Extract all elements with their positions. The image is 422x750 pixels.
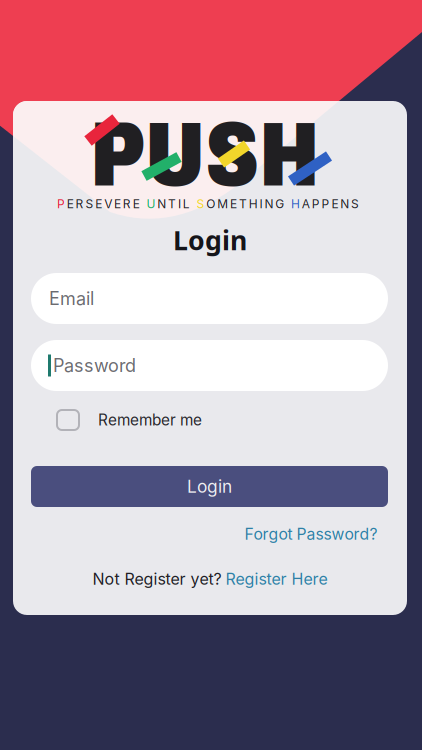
button[interactable]: Password: [31, 340, 388, 391]
button[interactable]: Login: [31, 466, 388, 507]
button[interactable]: Forgot Password?: [242, 524, 379, 543]
staticText: Password: [53, 355, 136, 376]
staticText: Register Here: [225, 569, 327, 589]
button[interactable]: Remember me: [57, 404, 217, 436]
staticText: Forgot Password?: [244, 524, 377, 543]
staticText: Login: [173, 222, 247, 258]
button[interactable]: Email: [31, 273, 388, 324]
staticText: PERSEVERE UNTIL SOMETHING HAPPENS: [57, 197, 359, 211]
staticText: Not Register yet?: [92, 569, 221, 589]
staticText: Login: [187, 476, 232, 497]
staticText: PUSH: [90, 105, 320, 205]
staticText: Remember me: [98, 411, 202, 429]
button[interactable]: Register Here: [225, 569, 327, 589]
staticText: Email: [49, 288, 94, 309]
